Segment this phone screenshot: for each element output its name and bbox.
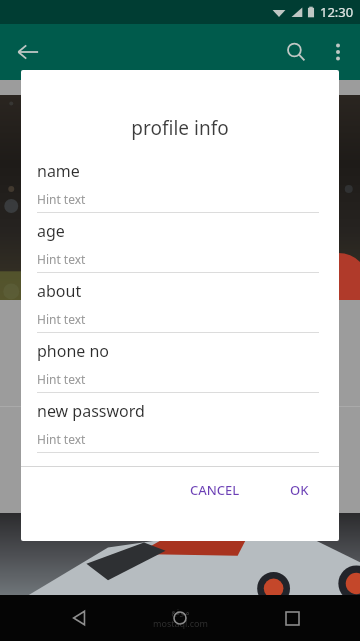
button[interactable]: Back [6,30,50,74]
button[interactable]: Back [60,598,100,638]
button[interactable]: new password [21,400,339,460]
staticText: Hint text [37,191,86,207]
button[interactable]: More options [318,32,358,72]
staticText: age [37,220,65,242]
staticText: Hint text [37,371,86,387]
button[interactable]: OK [280,473,319,507]
button[interactable]: name [21,160,339,220]
staticText: موقع mostaql.com [153,607,208,629]
button[interactable]: about [21,280,339,340]
staticText: about [37,280,82,302]
button[interactable]: Search [274,30,318,74]
staticText: profile info [21,115,339,141]
staticText: new password [37,400,145,422]
staticText: name [37,160,80,182]
button[interactable]: Home [160,598,200,638]
button[interactable]: CANCEL [180,473,250,507]
staticText: OK [290,481,309,499]
button[interactable]: Recent apps [272,598,312,638]
staticText: Hint text [37,431,86,447]
button[interactable]: phone no [21,340,339,400]
staticText: 12:30 [320,3,354,21]
staticText: phone no [37,340,110,362]
staticText: CANCEL [190,481,240,499]
staticText: Hint text [37,311,86,327]
button[interactable]: age [21,220,339,280]
staticText: Hint text [37,251,86,267]
